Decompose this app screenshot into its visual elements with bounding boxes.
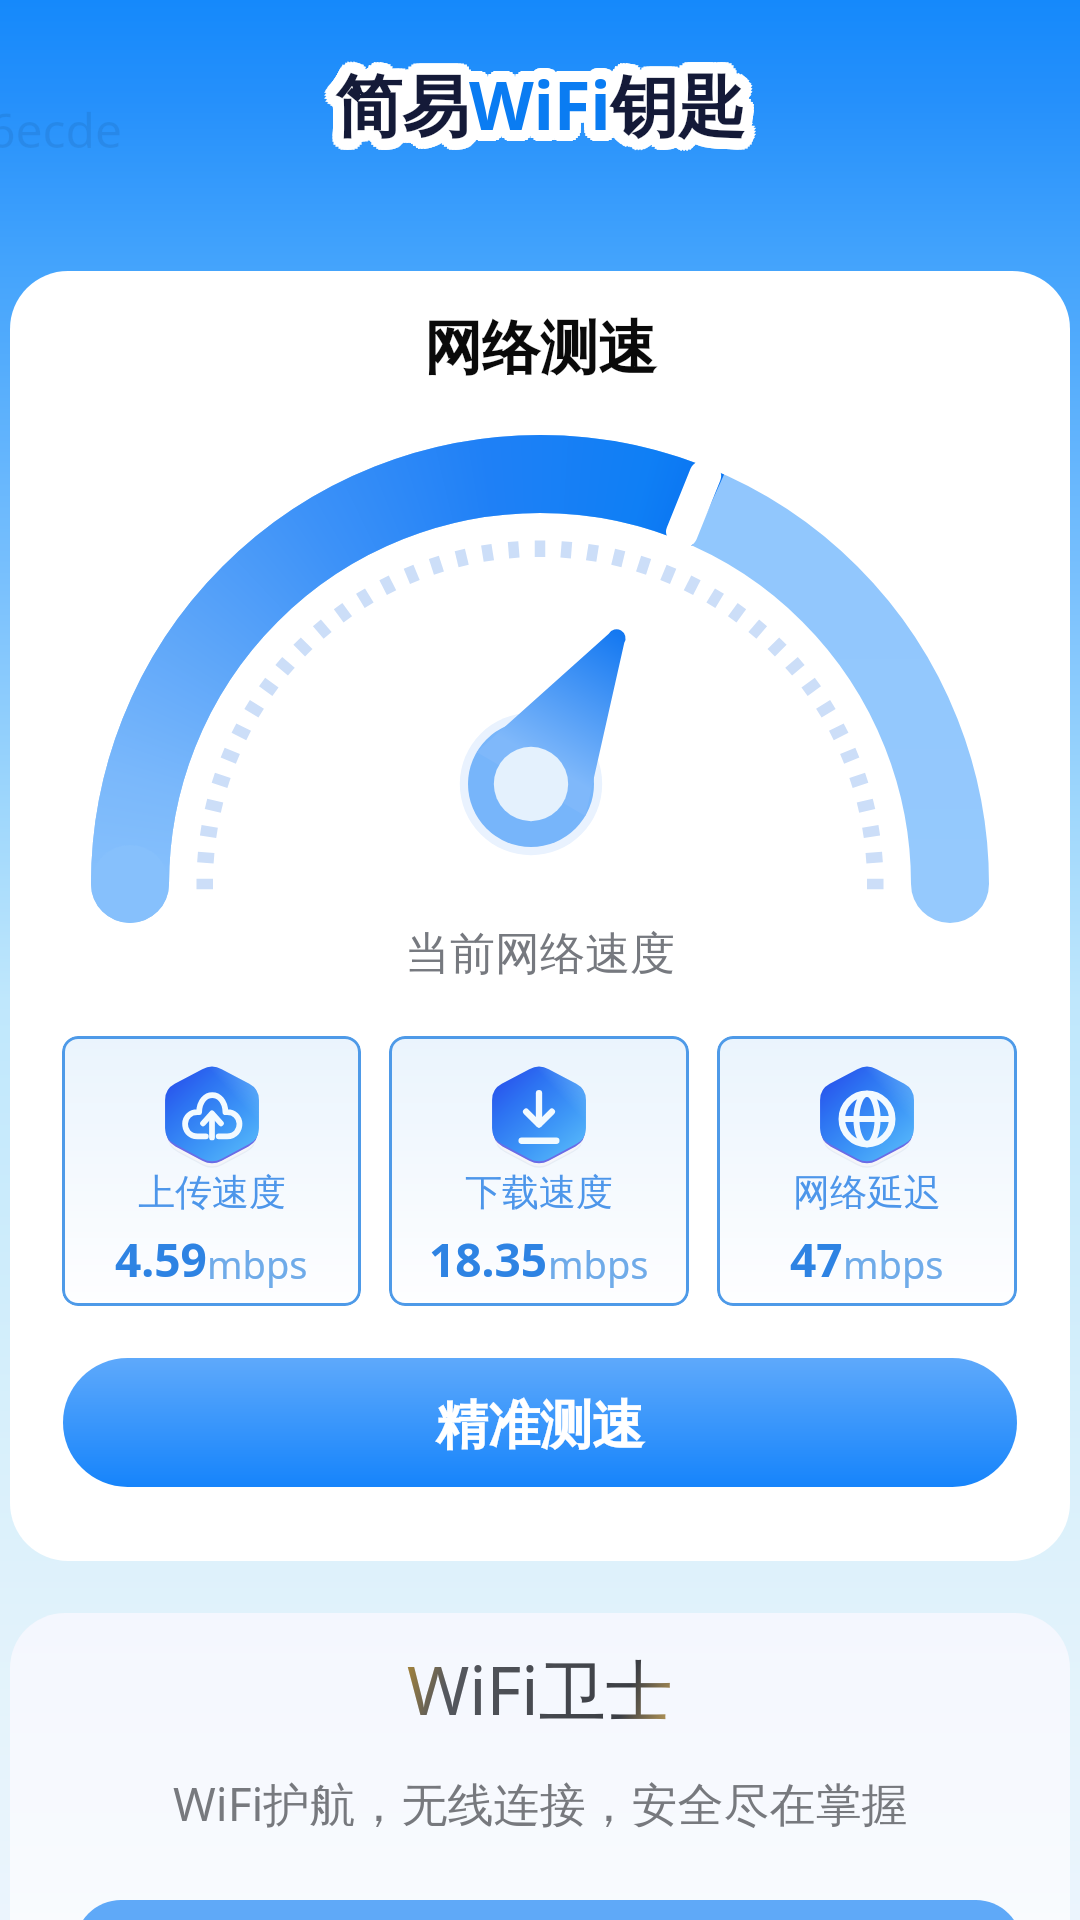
staticText: 简易WiFi钥匙 <box>331 51 741 143</box>
staticText: 简易WiFi钥匙 <box>332 69 742 161</box>
staticText: 简易WiFi钥匙 <box>335 62 745 154</box>
staticText: 简易WiFi钥匙 <box>342 54 752 146</box>
staticText: 简易WiFi钥匙 <box>338 60 748 152</box>
staticText: 简易WiFi钥匙 <box>338 47 748 139</box>
staticText: 简易WiFi钥匙 <box>339 57 749 149</box>
staticText: 简易WiFi钥匙 <box>337 50 747 142</box>
staticText: 简易WiFi钥匙 <box>336 54 746 146</box>
staticText: 简易WiFi钥匙 <box>335 69 745 161</box>
staticText: 简易WiFi钥匙 <box>339 59 749 151</box>
staticText: 简易WiFi钥匙 <box>343 60 753 152</box>
staticText: 简易WiFi钥匙 <box>327 66 737 158</box>
staticText: 简易WiFi钥匙 <box>338 61 748 153</box>
staticText: mbps <box>207 1238 308 1290</box>
staticText: WiFi护航，无线连接，安全尽在掌握 <box>173 1772 908 1835</box>
staticText: 简易WiFi钥匙 <box>334 62 744 154</box>
staticText: 简易WiFi钥匙 <box>338 69 748 161</box>
staticText: 4.59 <box>115 1228 207 1291</box>
staticText: 简易WiFi钥匙 <box>341 48 751 140</box>
staticText: 简易WiFi钥匙 <box>331 59 741 151</box>
staticText: 当前网络速度 <box>405 926 675 983</box>
staticText: 简易WiFi钥匙 <box>331 58 741 150</box>
staticText: 简易WiFi钥匙 <box>339 51 749 143</box>
staticText: 简易WiFi钥匙 <box>342 62 752 154</box>
staticText: 简易WiFi钥匙 <box>338 55 748 147</box>
staticText: 简易WiFi钥匙 <box>343 50 753 142</box>
staticText: 简易WiFi钥匙 <box>328 54 738 146</box>
staticText: 简易WiFi钥匙 <box>331 65 741 157</box>
staticText: 简易WiFi钥匙 <box>346 58 756 150</box>
staticText: 简易WiFi钥匙 <box>346 61 756 153</box>
button[interactable]: 下载速度 <box>389 1036 689 1306</box>
button[interactable]: WiFi卫士 <box>10 1613 1070 1920</box>
staticText: 简易WiFi钥匙 <box>337 61 747 153</box>
staticText: 简易WiFi钥匙 <box>341 68 751 160</box>
staticText: 简易WiFi钥匙 <box>336 62 746 154</box>
staticText: 简易WiFi钥匙 <box>328 62 738 154</box>
staticText: 简易WiFi钥匙 <box>329 64 739 156</box>
button[interactable]: 上传速度 <box>62 1036 361 1306</box>
staticText: 简易WiFi钥匙 <box>341 52 751 144</box>
staticText: 简易WiFi钥匙 <box>332 56 742 148</box>
staticText: 简易WiFi钥匙 <box>335 47 745 139</box>
staticText: 简易WiFi钥匙 <box>335 66 745 158</box>
staticText: 简易WiFi钥匙 <box>330 48 740 140</box>
staticText: 简易WiFi钥匙 <box>337 66 747 158</box>
staticText: 简易WiFi钥匙 <box>327 58 737 150</box>
staticText: 47 <box>790 1228 843 1291</box>
staticText: 上传速度 <box>138 1169 286 1216</box>
staticText: mbps <box>843 1238 944 1290</box>
staticText: 简易WiFi钥匙 <box>330 68 740 160</box>
staticText: 简易WiFi钥匙 <box>335 50 745 142</box>
staticText: mbps <box>548 1238 649 1290</box>
staticText: 网络测速 <box>424 312 656 385</box>
staticText: 简易WiFi钥匙 <box>325 64 735 156</box>
staticText: 简易WiFi钥匙 <box>324 61 734 153</box>
staticText: 简易WiFi钥匙 <box>324 58 734 150</box>
staticText: 简易WiFi钥匙 <box>332 55 742 147</box>
staticText: 简易WiFi钥匙 <box>338 56 748 148</box>
staticText: 精准测速 <box>436 1393 644 1459</box>
staticText: 简易WiFi钥匙 <box>343 56 753 148</box>
staticText: 简易WiFi钥匙 <box>332 60 742 152</box>
staticText: 简易WiFi钥匙 <box>333 50 743 142</box>
staticText: 简易WiFi钥匙 <box>346 55 756 147</box>
staticText: 简易WiFi钥匙 <box>345 53 755 145</box>
staticText: 简易WiFi钥匙 <box>331 57 741 149</box>
staticText: 简易WiFi钥匙 <box>343 66 753 158</box>
staticText: 下载速度 <box>465 1169 613 1216</box>
staticText: 简易WiFi钥匙 <box>345 64 755 156</box>
staticText: 简易WiFi钥匙 <box>334 54 744 146</box>
staticText: WiFi卫士 <box>407 1643 673 1735</box>
staticText: 简易WiFi钥匙 <box>337 55 747 147</box>
staticText: 简易WiFi钥匙 <box>335 54 745 146</box>
staticText: 网络延迟 <box>793 1169 941 1216</box>
button[interactable]: 网络延迟 <box>717 1036 1017 1306</box>
staticText: 简易WiFi钥匙 <box>329 52 739 144</box>
staticText: 简易WiFi钥匙 <box>343 58 753 150</box>
staticText: 简易WiFi钥匙 <box>325 53 735 145</box>
button[interactable]: 立即开启 WiFi 卫士 <box>75 1900 1022 1920</box>
staticText: 简易WiFi钥匙 <box>333 55 743 147</box>
staticText: 简易WiFi钥匙 <box>333 66 743 158</box>
staticText: 简易WiFi钥匙 <box>333 61 743 153</box>
staticText: 简易WiFi钥匙 <box>335 58 745 150</box>
staticText: 简易WiFi钥匙 <box>324 55 734 147</box>
staticText: 简易WiFi钥匙 <box>327 60 737 152</box>
staticText: 简易WiFi钥匙 <box>341 64 751 156</box>
staticText: 简易WiFi钥匙 <box>339 65 749 157</box>
staticText: 6ecde <box>0 97 123 162</box>
staticText: 简易WiFi钥匙 <box>332 61 742 153</box>
staticText: 简易WiFi钥匙 <box>327 56 737 148</box>
button[interactable]: 精准测速 <box>63 1358 1017 1487</box>
staticText: 简易WiFi钥匙 <box>339 58 749 150</box>
staticText: 简易WiFi钥匙 <box>327 50 737 142</box>
staticText: 简易WiFi钥匙 <box>332 47 742 139</box>
staticText: 18.35 <box>429 1228 548 1291</box>
